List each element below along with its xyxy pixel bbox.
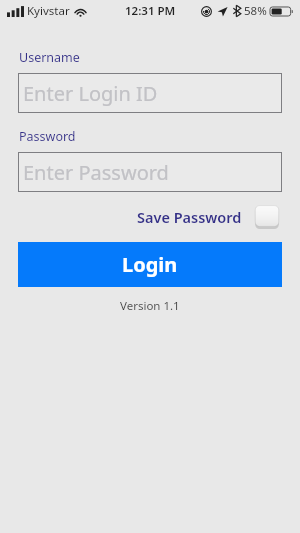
- staticText: Kyivstar: [27, 3, 70, 19]
- button[interactable]: Enter Login ID: [18, 73, 282, 113]
- staticText: Username: [19, 49, 80, 66]
- staticText: Login: [122, 251, 178, 278]
- staticText: Version 1.1: [120, 298, 180, 314]
- staticText: Enter Password: [23, 159, 169, 186]
- button[interactable]: Save password toggle: [254, 205, 280, 229]
- button[interactable]: Enter Password: [18, 152, 282, 192]
- button[interactable]: Login: [18, 242, 282, 287]
- staticText: Enter Login ID: [23, 80, 158, 107]
- button[interactable]: Save Password: [135, 203, 282, 231]
- staticText: Save Password: [137, 207, 242, 227]
- staticText: Password: [19, 128, 76, 145]
- staticText: 58%: [244, 3, 267, 19]
- staticText: 12:31 PM: [125, 3, 176, 19]
